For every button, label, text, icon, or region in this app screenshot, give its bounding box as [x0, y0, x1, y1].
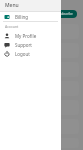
staticText: Logout [15, 51, 30, 57]
button[interactable] [4, 62, 79, 77]
button[interactable] [4, 100, 79, 115]
button[interactable]: My Profile [0, 31, 61, 40]
staticText: My Profile [15, 33, 37, 39]
button[interactable] [4, 81, 79, 96]
staticText: Billing [15, 14, 29, 20]
button[interactable] [4, 138, 79, 148]
staticText: Account [5, 24, 19, 29]
button[interactable] [4, 119, 79, 134]
staticText: Support [15, 42, 32, 48]
button[interactable]: Subscribe [55, 10, 77, 18]
button[interactable]: Billing [0, 12, 61, 21]
button[interactable] [4, 24, 79, 39]
button[interactable] [4, 43, 79, 58]
staticText: Subscribe [59, 12, 73, 16]
button[interactable]: Logout [0, 49, 61, 58]
button[interactable]: Support [0, 40, 61, 49]
staticText: Menu [5, 2, 19, 9]
